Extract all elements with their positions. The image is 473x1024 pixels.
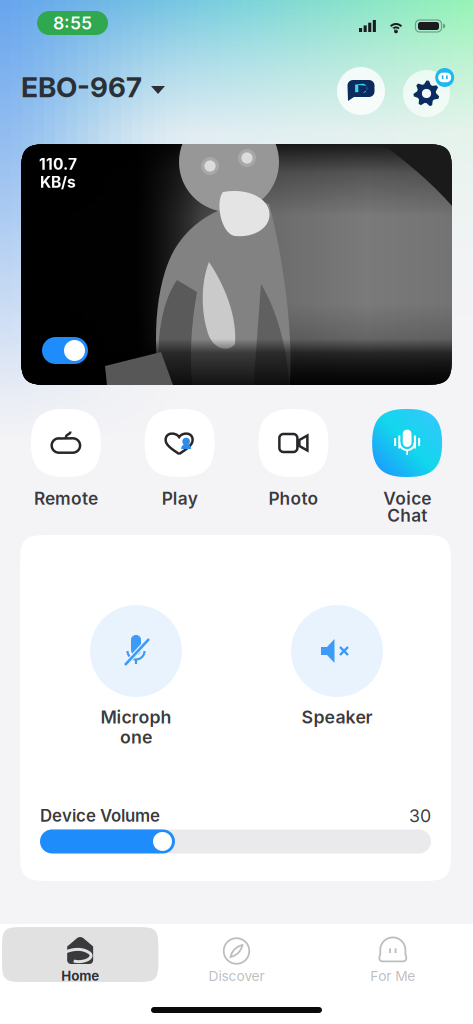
staticText: Photo [268, 488, 318, 509]
button[interactable]: Photo [236, 409, 350, 533]
staticText: Device Volume [40, 806, 160, 826]
button[interactable]: Home [2, 927, 158, 982]
button[interactable]: Microphone [90, 605, 182, 765]
button[interactable]: Settings [403, 70, 450, 117]
staticText: 110.7 [39, 155, 77, 173]
staticText: Speaker [301, 706, 372, 728]
staticText: 30 [409, 805, 431, 826]
button[interactable]: Play [123, 409, 237, 533]
button[interactable]: Voice [350, 409, 464, 533]
staticText: EBO-967 [21, 70, 142, 104]
staticText: 8:55 [53, 12, 92, 34]
button[interactable]: Discover [158, 927, 315, 982]
button[interactable]: Power [42, 337, 88, 364]
staticText: one [120, 726, 152, 748]
staticText: Remote [34, 488, 98, 509]
staticText: Home [61, 968, 99, 984]
staticText: KB/s [40, 173, 76, 191]
staticText: Chat [387, 505, 427, 526]
staticText: Discover [208, 968, 264, 984]
staticText: Microph [100, 706, 171, 728]
staticText: Voice [383, 488, 431, 509]
staticText: For Me [370, 968, 415, 984]
button[interactable]: Remote [9, 409, 123, 533]
button[interactable]: EBO-967 [21, 68, 165, 106]
button[interactable]: For Me [315, 927, 471, 982]
button[interactable]: Two-way talk [337, 67, 385, 115]
staticText: Play [162, 488, 198, 509]
button[interactable]: Speaker [291, 605, 383, 765]
